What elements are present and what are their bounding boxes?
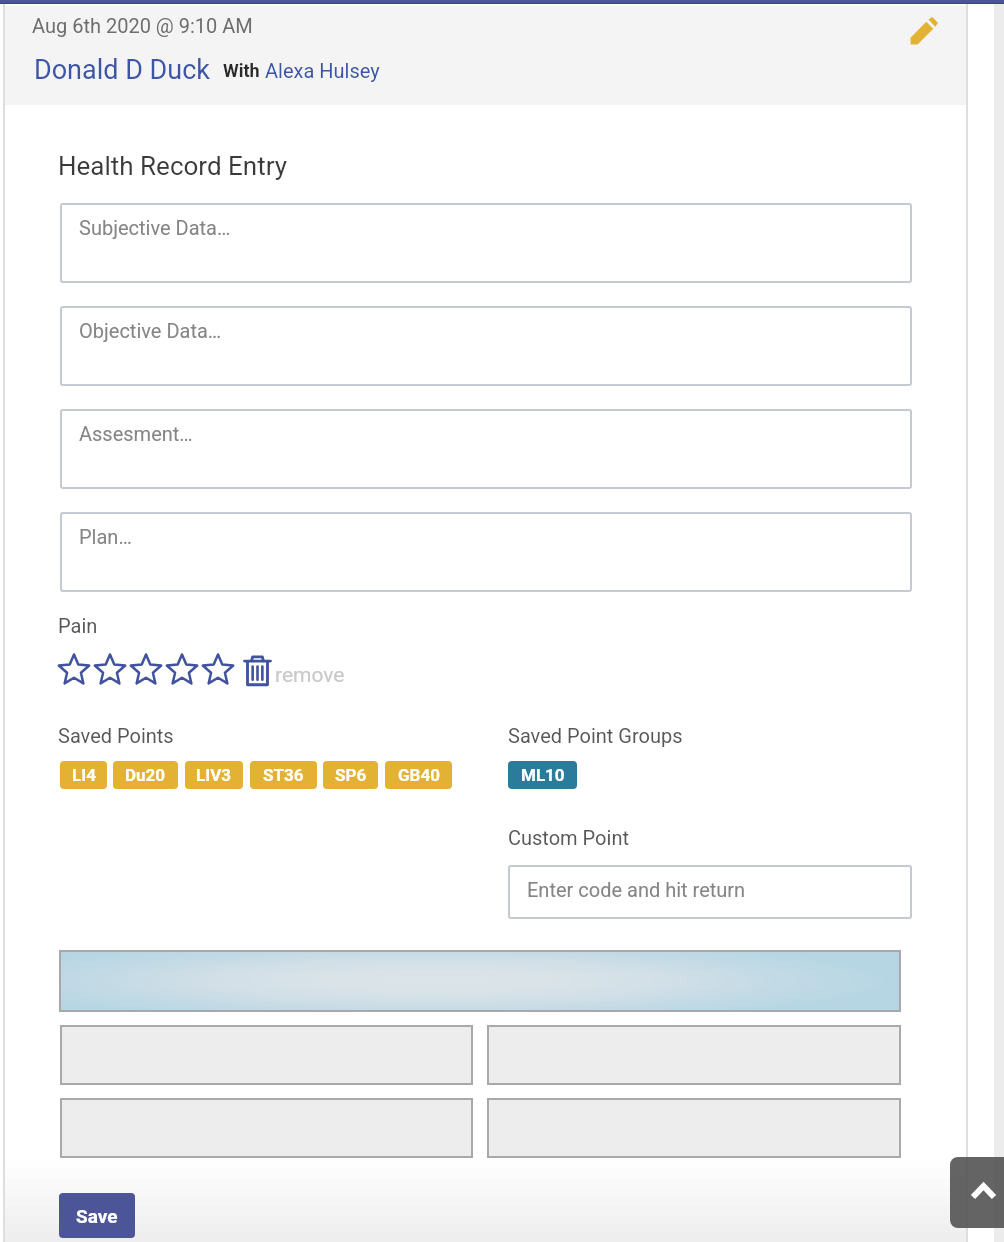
staticText: Assesment… — [79, 422, 193, 445]
staticText: remove — [275, 663, 345, 688]
staticText: Plan… — [79, 525, 132, 548]
staticText: ST36 — [263, 765, 304, 785]
button[interactable]: Pain rating star — [94, 654, 130, 686]
staticText: Health Record Entry — [58, 151, 287, 181]
button[interactable]: Du20 — [113, 761, 178, 789]
button[interactable]: Pain rating star — [58, 654, 94, 686]
staticText: Save — [76, 1205, 118, 1227]
button[interactable]: remove — [243, 653, 345, 687]
staticText: Alexa Hulsey — [265, 59, 380, 82]
staticText: LIV3 — [196, 765, 232, 785]
button[interactable] — [60, 512, 912, 592]
button[interactable]: Scroll to top — [950, 1157, 1004, 1228]
staticText: GB40 — [398, 765, 440, 785]
staticText: With — [223, 60, 260, 81]
button[interactable]: ST36 — [250, 761, 317, 789]
staticText: Saved Point Groups — [508, 724, 683, 747]
button[interactable]: Edit record — [902, 9, 946, 53]
staticText: Donald D Duck — [34, 54, 211, 86]
staticText: Saved Points — [58, 724, 174, 747]
staticText: SP6 — [335, 765, 367, 785]
button[interactable]: Pain rating star — [166, 654, 202, 686]
staticText: Aug 6th 2020 @ 9:10 AM — [32, 14, 253, 37]
staticText: Objective Data… — [79, 319, 222, 342]
button[interactable]: GB40 — [385, 761, 452, 789]
button[interactable]: LIV3 — [185, 761, 243, 789]
button[interactable] — [60, 306, 912, 386]
button[interactable] — [60, 409, 912, 489]
button[interactable]: Save — [59, 1193, 135, 1238]
staticText: Subjective Data… — [79, 216, 231, 239]
button[interactable] — [60, 203, 912, 283]
staticText: Pain — [58, 614, 98, 637]
button[interactable]: Pain rating star — [130, 654, 166, 686]
staticText: Custom Point — [508, 826, 629, 849]
button[interactable]: SP6 — [323, 761, 378, 789]
staticText: ML10 — [521, 765, 565, 785]
staticText: Du20 — [125, 765, 166, 785]
button[interactable]: LI4 — [60, 761, 107, 789]
button[interactable]: Pain rating star — [202, 654, 238, 686]
button[interactable]: ML10 — [508, 761, 577, 789]
staticText: Enter code and hit return — [527, 878, 746, 901]
button[interactable] — [508, 865, 912, 919]
staticText: LI4 — [72, 765, 96, 785]
